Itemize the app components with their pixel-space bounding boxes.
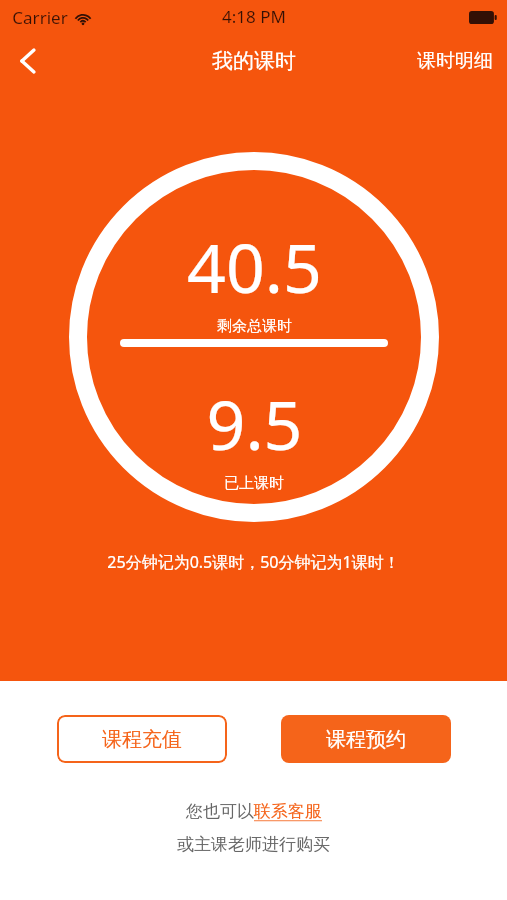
- button[interactable]: 您也可以联系客服: [186, 801, 322, 822]
- button[interactable]: 课时明细: [403, 34, 507, 88]
- staticText: 已上课时: [224, 474, 284, 493]
- button[interactable]: Back: [0, 34, 54, 88]
- button[interactable]: 课程充值: [57, 715, 227, 763]
- staticText: 25分钟记为0.5课时，50分钟记为1课时！: [0, 551, 507, 573]
- staticText: 剩余总课时: [217, 317, 292, 336]
- staticText: Carrier: [12, 6, 68, 29]
- staticText: 课时明细: [417, 49, 493, 73]
- button[interactable]: 课程预约: [281, 715, 451, 763]
- staticText: 9.5: [206, 377, 303, 470]
- staticText: 4:18 PM: [222, 5, 286, 28]
- staticText: 40.5: [187, 220, 322, 313]
- staticText: 课程预约: [326, 727, 406, 752]
- staticText: 或主课老师进行购买: [177, 834, 330, 855]
- staticText: 课程充值: [102, 727, 182, 752]
- staticText: 您也可以联系客服: [186, 801, 322, 822]
- staticText: 我的课时: [212, 48, 296, 74]
